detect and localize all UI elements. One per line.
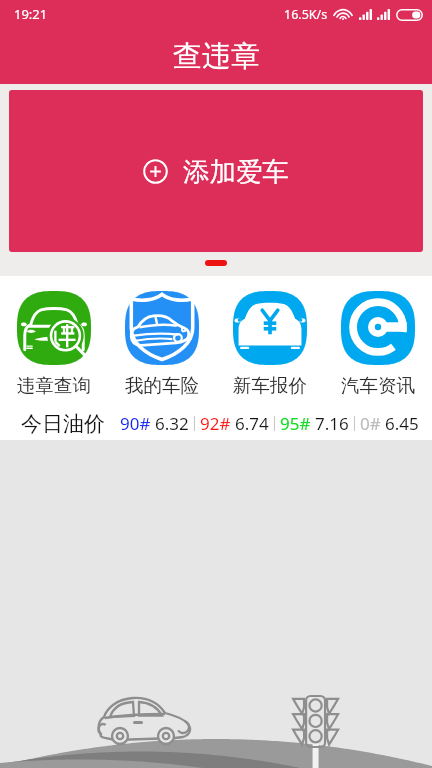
other: Battery: [396, 9, 423, 21]
button[interactable]: 我的车险: [108, 276, 216, 397]
staticText: 7.16: [315, 412, 349, 435]
button[interactable]: 违章查询: [0, 276, 108, 397]
button[interactable]: 添加爱车: [9, 90, 423, 252]
staticText: 6.45: [385, 412, 419, 435]
staticText: 19:21: [14, 5, 48, 23]
staticText: 16.5K/s: [284, 6, 328, 23]
button[interactable]: 汽车资讯: [324, 276, 432, 397]
staticText: 违章查询: [17, 374, 91, 397]
staticText: 95#: [280, 412, 311, 435]
button[interactable]: 新车报价: [216, 276, 324, 397]
staticText: 汽车资讯: [341, 374, 415, 397]
staticText: 添加爱车: [183, 155, 289, 188]
staticText: 6.32: [155, 412, 189, 435]
staticText: 0#: [360, 412, 381, 435]
staticText: 今日油价: [21, 411, 105, 437]
staticText: 6.74: [235, 412, 269, 435]
button[interactable]: 今日油价: [0, 407, 432, 440]
staticText: 90#: [120, 412, 151, 435]
staticText: 92#: [200, 412, 231, 435]
other: Signal: [377, 9, 390, 20]
staticText: 我的车险: [125, 374, 199, 397]
staticText: 查违章: [173, 38, 260, 75]
other: Signal: [359, 9, 372, 20]
other: WiFi: [335, 9, 351, 20]
staticText: 新车报价: [233, 374, 307, 397]
